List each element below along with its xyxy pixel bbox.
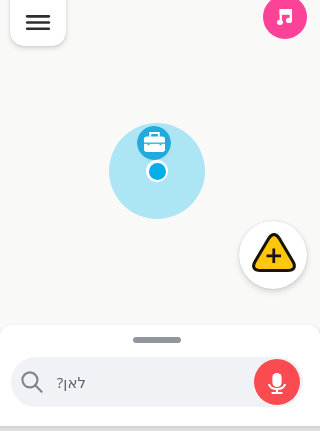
button[interactable]: Report <box>239 221 307 289</box>
button[interactable]: Music <box>263 0 307 39</box>
staticText: לאן? <box>56 372 86 392</box>
button[interactable]: Voice search <box>254 359 300 405</box>
button[interactable]: Menu <box>10 0 66 46</box>
other: Work place <box>137 126 171 160</box>
button[interactable]: לאן? <box>11 357 303 407</box>
